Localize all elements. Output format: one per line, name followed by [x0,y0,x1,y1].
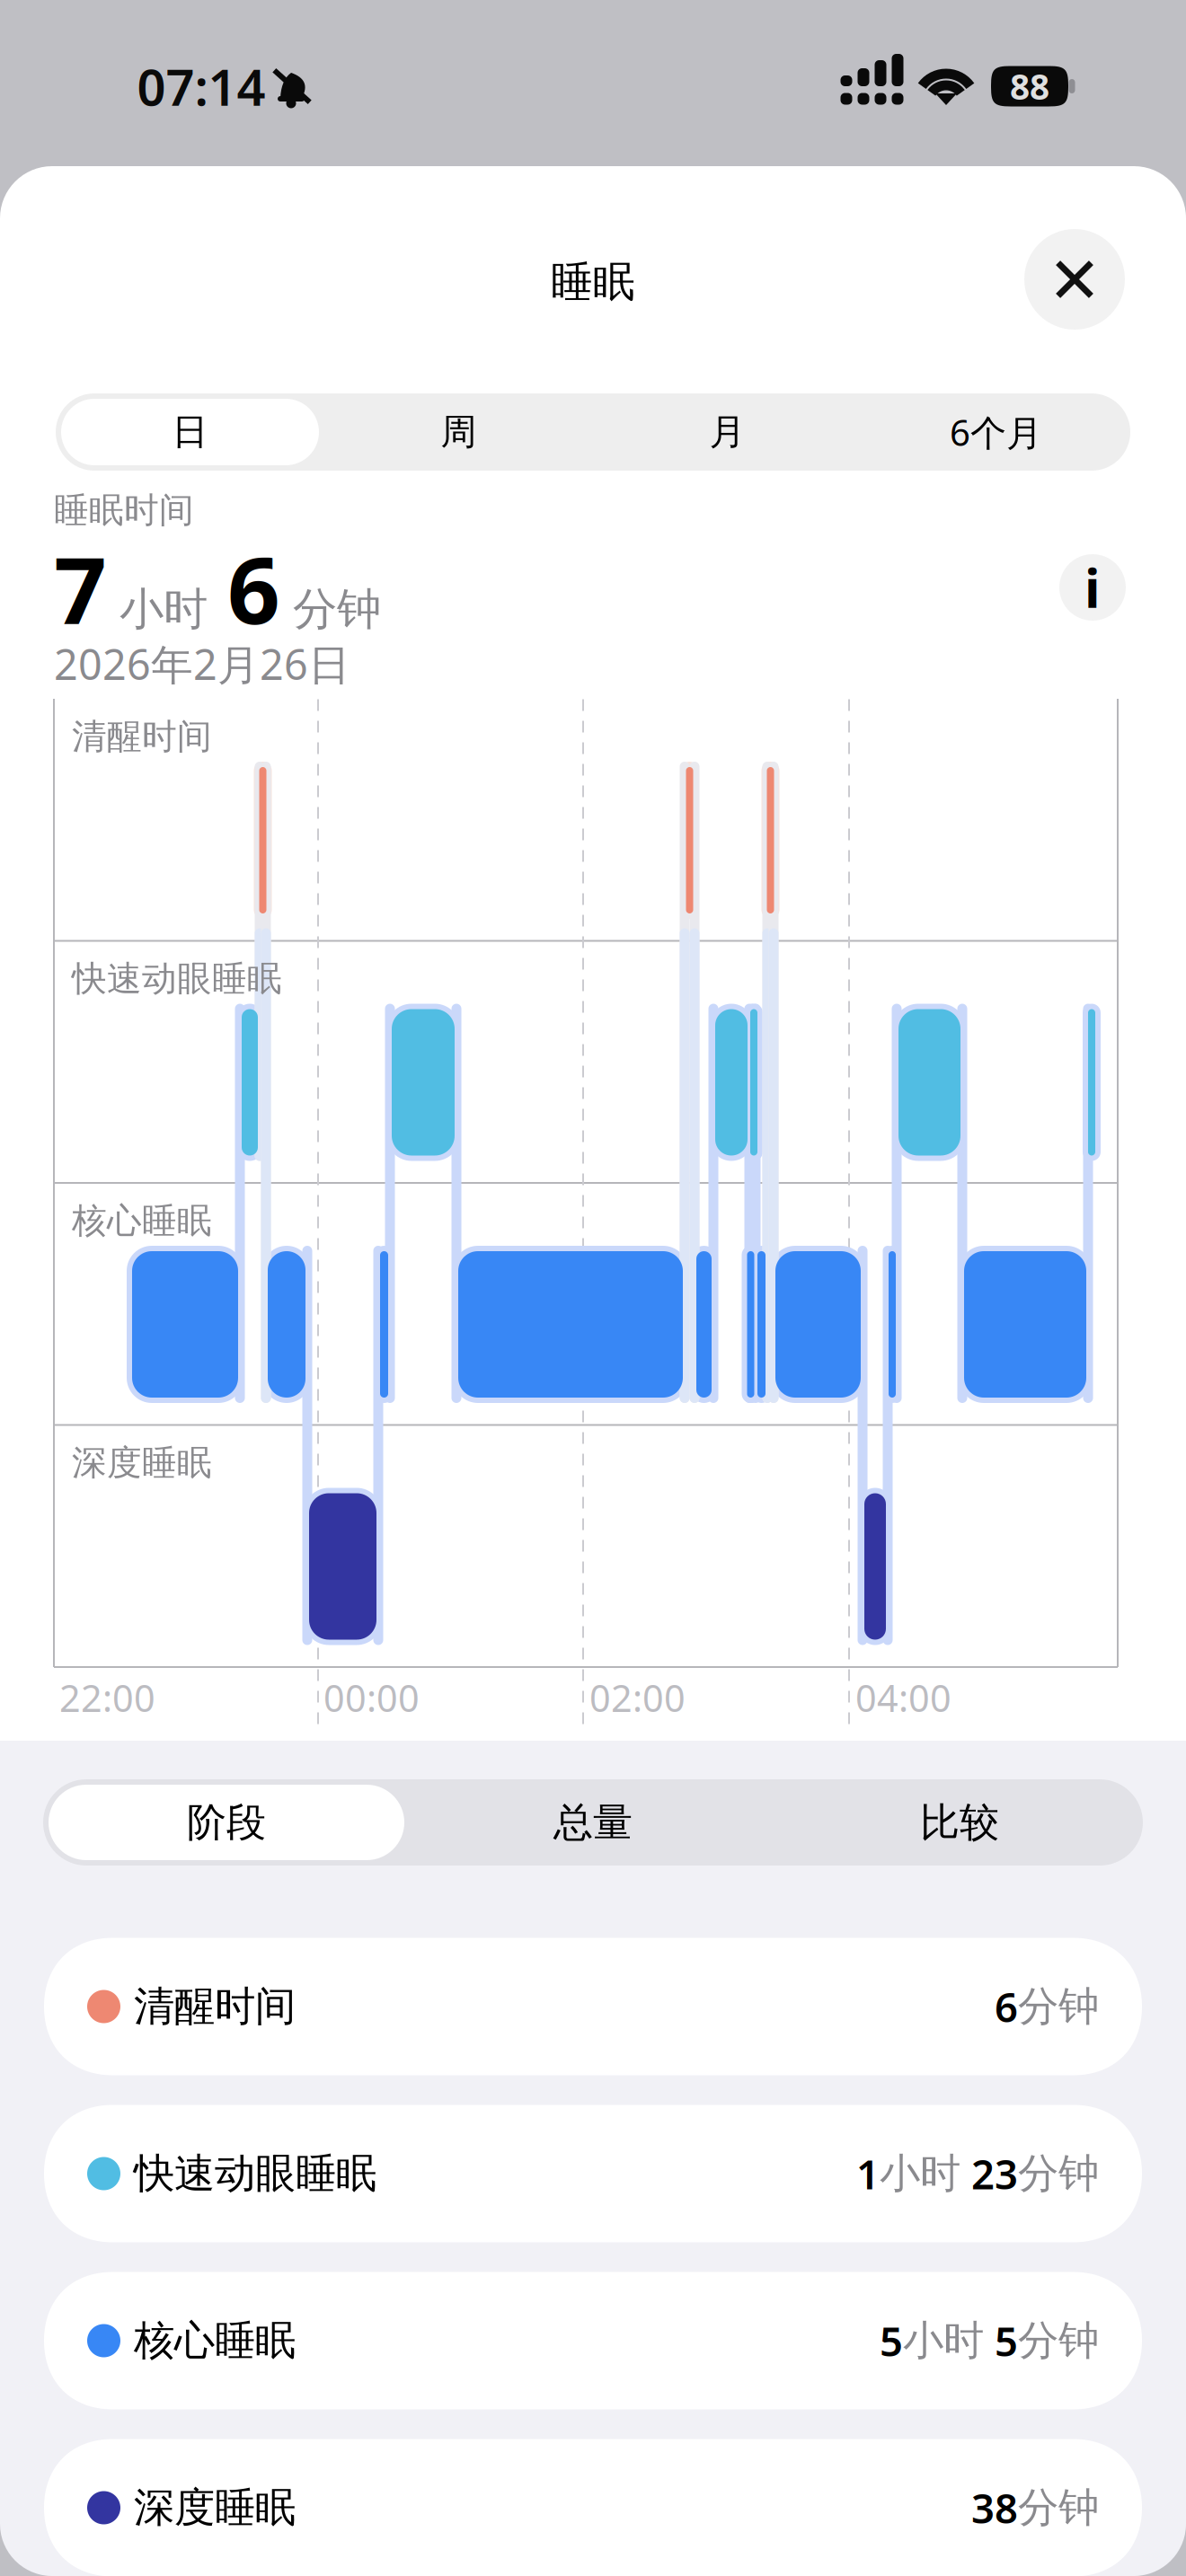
staticText: 月 [709,410,745,454]
staticText: 小时 [903,2316,984,2366]
staticText: 2026年2月26日 [54,636,350,692]
staticText: 00:00 [323,1673,420,1722]
button[interactable]: 核心睡眠 [44,2272,1142,2409]
button[interactable]: 总量 [410,1779,776,1866]
staticText: 38 [971,2481,1018,2535]
staticText: 分钟 [293,582,381,637]
staticText: 07:14 [137,53,266,120]
staticText: 7 [54,527,107,649]
button[interactable]: 清醒时间 [44,1938,1142,2075]
button[interactable]: 信息 [1059,552,1126,622]
button[interactable]: 6个月 [862,393,1130,471]
staticText: 小时 [880,2149,960,2199]
button[interactable]: 阶段 [43,1779,410,1866]
staticText: 日 [172,410,208,454]
staticText: 分钟 [1018,1982,1099,2032]
staticText: 总量 [553,1798,633,1847]
staticText: 1 [856,2147,880,2201]
button[interactable]: 深度睡眠 [44,2439,1142,2576]
staticText: 23 [960,2147,1018,2201]
button[interactable]: 日 [56,393,324,471]
staticText: 比较 [920,1798,999,1847]
staticText: 分钟 [1018,2316,1099,2366]
button[interactable]: 比较 [776,1779,1143,1866]
staticText: 分钟 [1018,2483,1099,2533]
staticText: 快速动眼睡眠 [72,957,282,1000]
staticText: i [1084,552,1101,622]
staticText: 6 [227,527,280,649]
staticText: 快速动眼睡眠 [134,2149,376,2199]
staticText: 88 [1010,63,1049,109]
staticText: 清醒时间 [134,1982,296,2032]
staticText: 睡眠时间 [54,489,194,532]
staticText: 6 [995,1980,1018,2034]
staticText: 5 [984,2314,1018,2368]
staticText: 6个月 [950,408,1042,456]
staticText: 核心睡眠 [72,1199,212,1242]
staticText: 02:00 [589,1673,686,1722]
staticText: 睡眠 [551,256,635,308]
staticText: 5 [880,2314,903,2368]
staticText: 阶段 [187,1798,266,1847]
staticText: 周 [441,410,477,454]
staticText: 深度睡眠 [72,1441,212,1484]
staticText: 04:00 [855,1673,951,1722]
button[interactable]: 月 [593,393,862,471]
staticText: 22:00 [59,1673,155,1722]
staticText: 深度睡眠 [134,2483,296,2533]
staticText: 核心睡眠 [134,2316,296,2366]
button[interactable]: 快速动眼睡眠 [44,2105,1142,2242]
staticText: 清醒时间 [72,715,212,758]
staticText: 小时 [119,582,208,637]
button[interactable]: 关闭 [1024,229,1125,330]
button[interactable]: 周 [324,393,593,471]
staticText: 分钟 [1018,2149,1099,2199]
